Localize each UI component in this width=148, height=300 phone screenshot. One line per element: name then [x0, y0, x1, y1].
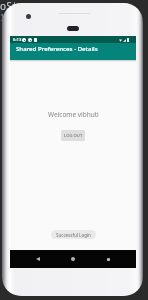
- staticText: oSt: [0, 0, 18, 13]
- staticText: Welcome vibhuti: [48, 110, 99, 119]
- button[interactable]: LOG OUT: [61, 130, 85, 141]
- staticText: LOG OUT: [64, 133, 83, 139]
- staticText: 6:13: [13, 37, 22, 43]
- button[interactable]: Recent apps: [101, 250, 115, 268]
- staticText: Shared Preferences - Details: [16, 44, 98, 52]
- staticText: 1: [0, 12, 5, 23]
- button[interactable]: Back: [31, 250, 45, 268]
- staticText: Successful Login: [56, 232, 91, 238]
- button[interactable]: Home: [66, 250, 80, 268]
